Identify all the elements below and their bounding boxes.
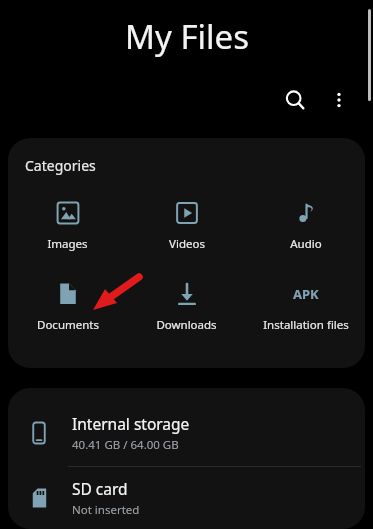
button[interactable]: SD card (8, 467, 365, 529)
staticText: Categories (25, 156, 96, 175)
staticText: APK (293, 285, 319, 303)
button[interactable]: More options (317, 78, 361, 122)
staticText: Downloads (156, 317, 217, 333)
staticText: Not inserted (72, 502, 140, 518)
staticText: Internal storage (72, 413, 190, 434)
button[interactable]: Downloads (127, 278, 246, 335)
button[interactable]: Audio (246, 197, 365, 254)
staticText: My Files (125, 14, 249, 59)
button[interactable]: Internal storage (8, 400, 365, 466)
button[interactable]: Documents (8, 278, 127, 335)
button[interactable]: Videos (127, 197, 246, 254)
staticText: Documents (37, 317, 99, 333)
staticText: 40.41 GB / 64.00 GB (72, 437, 179, 453)
staticText: SD card (72, 478, 128, 499)
button[interactable]: Images (8, 197, 127, 254)
staticText: Videos (169, 236, 205, 252)
button[interactable]: Search (273, 78, 317, 122)
staticText: Audio (290, 236, 322, 252)
staticText: Images (47, 236, 88, 252)
staticText: Installation files (263, 317, 349, 333)
button[interactable]: APK (246, 278, 365, 335)
